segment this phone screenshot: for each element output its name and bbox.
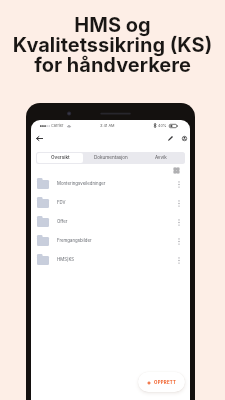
staticText: 40% — [158, 123, 167, 128]
staticText: Monteringsveiledninger — [57, 181, 106, 186]
button[interactable]: Profile — [179, 133, 189, 143]
button[interactable]: More options — [174, 236, 184, 246]
staticText: HMS|KS — [57, 257, 75, 262]
button[interactable]: Back — [34, 133, 45, 144]
button[interactable]: OPPRETT — [138, 372, 185, 392]
button[interactable]: More options — [174, 255, 184, 265]
staticText: Avvik — [155, 155, 167, 161]
staticText: Offer — [57, 219, 68, 224]
button[interactable]: Grid view — [172, 166, 181, 174]
staticText: Dokumentasjon — [94, 155, 128, 161]
button[interactable]: More options — [174, 198, 184, 208]
button[interactable]: Edit — [165, 133, 175, 143]
staticText: Fremgangsbilder — [57, 238, 92, 243]
staticText: OPPRETT — [154, 380, 177, 385]
button[interactable]: Oversikt — [37, 153, 83, 163]
button[interactable]: FDV — [31, 193, 190, 212]
staticText: Oversikt — [51, 155, 70, 161]
button[interactable]: Monteringsveiledninger — [31, 174, 190, 193]
button[interactable]: HMS|KS — [31, 250, 190, 269]
staticText: 3:41 AM — [100, 123, 115, 128]
staticText: FDV — [57, 200, 66, 205]
staticText: Carrier — [51, 123, 64, 128]
button[interactable]: Dokumentasjon — [83, 153, 138, 163]
button[interactable]: More options — [174, 217, 184, 227]
staticText: HMS og Kvalitetssikring (KS) for håndver… — [0, 13, 225, 77]
button[interactable]: Avvik — [138, 153, 184, 163]
button[interactable]: Fremgangsbilder — [31, 231, 190, 250]
button[interactable]: More options — [174, 179, 184, 189]
button[interactable]: Offer — [31, 212, 190, 231]
